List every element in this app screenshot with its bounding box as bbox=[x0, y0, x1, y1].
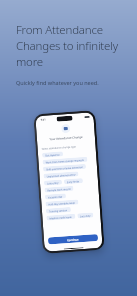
staticText: Half-day schedule swap bbox=[48, 201, 75, 205]
staticText: Work from home change requests bbox=[45, 158, 84, 164]
staticText: Continue bbox=[67, 237, 79, 242]
button[interactable]: Work from home change requests bbox=[42, 157, 88, 165]
button[interactable]: Shift overtime or leave extension bbox=[43, 164, 86, 172]
button[interactable]: Continue bbox=[48, 234, 98, 245]
staticText: Your Attendance Change bbox=[49, 135, 83, 141]
button[interactable]: Remote work record bbox=[44, 186, 74, 193]
staticText: more bbox=[16, 54, 43, 70]
button[interactable]: Sick Absence bbox=[42, 151, 63, 158]
staticText: 9:41 bbox=[40, 117, 47, 122]
staticText: Jury duty bbox=[80, 214, 90, 217]
button[interactable]: Half-day schedule swap bbox=[45, 199, 79, 207]
staticText: Training session bbox=[49, 208, 68, 212]
staticText: Quickly find whatever you need. bbox=[16, 79, 99, 86]
staticText: Remote work record bbox=[47, 187, 71, 191]
staticText: Medical credit leave bbox=[49, 215, 73, 219]
staticText: Vacation day bbox=[48, 194, 63, 198]
button[interactable]: Medical credit leave bbox=[46, 214, 76, 221]
staticText: Early finish bbox=[67, 179, 80, 183]
button[interactable]: Jury duty bbox=[77, 212, 93, 218]
button[interactable]: Vacation day bbox=[45, 193, 66, 200]
staticText: Sick Absence bbox=[45, 153, 60, 157]
button[interactable]: Training session bbox=[46, 207, 71, 214]
staticText: From Attendance bbox=[16, 22, 103, 38]
button[interactable]: Early finish bbox=[64, 178, 83, 184]
staticText: Changes to infinitely bbox=[16, 38, 118, 54]
staticText: Select attendance change type bbox=[41, 144, 77, 150]
button[interactable]: Late entry bbox=[44, 179, 62, 186]
staticText: Unplanned absence entry bbox=[46, 172, 75, 177]
staticText: Shift overtime or leave extension bbox=[46, 165, 83, 171]
staticText: Late entry bbox=[47, 181, 59, 184]
button[interactable]: Unplanned absence entry bbox=[43, 171, 79, 179]
